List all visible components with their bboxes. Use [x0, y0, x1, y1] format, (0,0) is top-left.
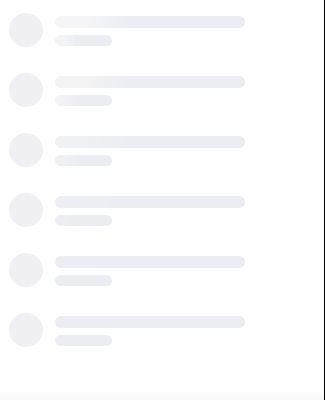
button[interactable]: Loading item — [0, 60, 325, 120]
button[interactable]: Loading item — [0, 180, 325, 240]
button[interactable]: Loading item — [0, 240, 325, 300]
button[interactable]: Loading item — [0, 120, 325, 180]
button[interactable]: Loading item — [0, 300, 325, 360]
button[interactable]: Loading item — [0, 0, 325, 60]
